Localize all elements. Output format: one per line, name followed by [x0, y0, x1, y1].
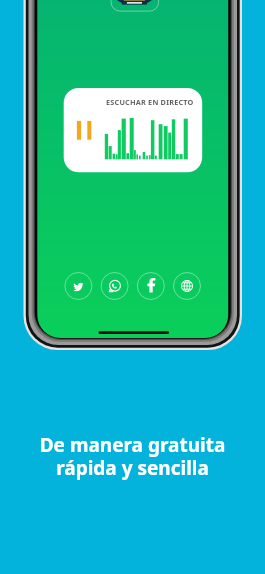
staticText: ESCUCHAR EN DIRECTO	[106, 97, 194, 107]
button[interactable]: Twitter	[65, 273, 91, 299]
staticText: De manera gratuita rápida y sencilla	[0, 432, 265, 480]
button[interactable]: WhatsApp	[101, 273, 127, 299]
button[interactable]: Facebook	[137, 273, 163, 299]
button[interactable]: Escuchar en directo	[63, 88, 202, 173]
button[interactable]: Sitio web	[173, 273, 199, 299]
